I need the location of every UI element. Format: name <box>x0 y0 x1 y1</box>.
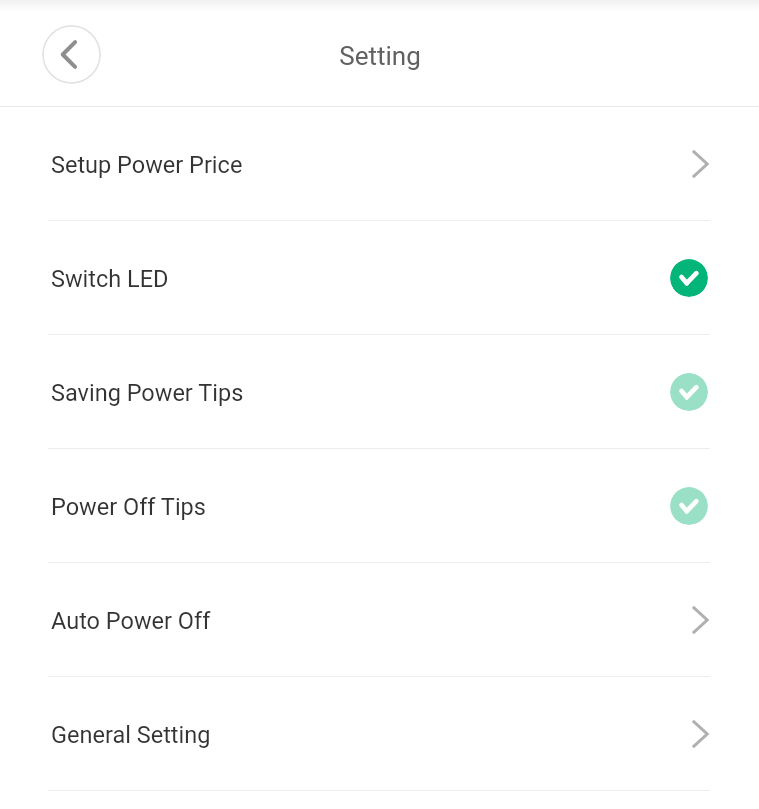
other: Setup Power Price <box>680 144 720 184</box>
other: General Setting <box>680 714 720 754</box>
staticText: Power Off Tips <box>51 493 206 521</box>
button[interactable]: Auto Power Off <box>0 563 759 676</box>
button[interactable]: Switch LED <box>0 221 759 334</box>
button[interactable]: Back <box>42 25 101 84</box>
button[interactable]: Setup Power Price <box>0 107 759 220</box>
staticText: Setting <box>339 41 421 71</box>
button[interactable]: Power Off Tips <box>0 449 759 562</box>
button[interactable]: General Setting <box>0 677 759 790</box>
staticText: Saving Power Tips <box>51 379 244 407</box>
button[interactable]: Switch LED <box>670 259 708 297</box>
button[interactable]: Saving Power Tips <box>670 373 708 411</box>
staticText: Switch LED <box>51 265 169 293</box>
button[interactable]: Power Off Tips <box>670 487 708 525</box>
button[interactable]: Saving Power Tips <box>0 335 759 448</box>
staticText: General Setting <box>51 721 211 749</box>
staticText: Setup Power Price <box>51 151 243 179</box>
staticText: Auto Power Off <box>51 607 211 635</box>
other: Auto Power Off <box>680 600 720 640</box>
